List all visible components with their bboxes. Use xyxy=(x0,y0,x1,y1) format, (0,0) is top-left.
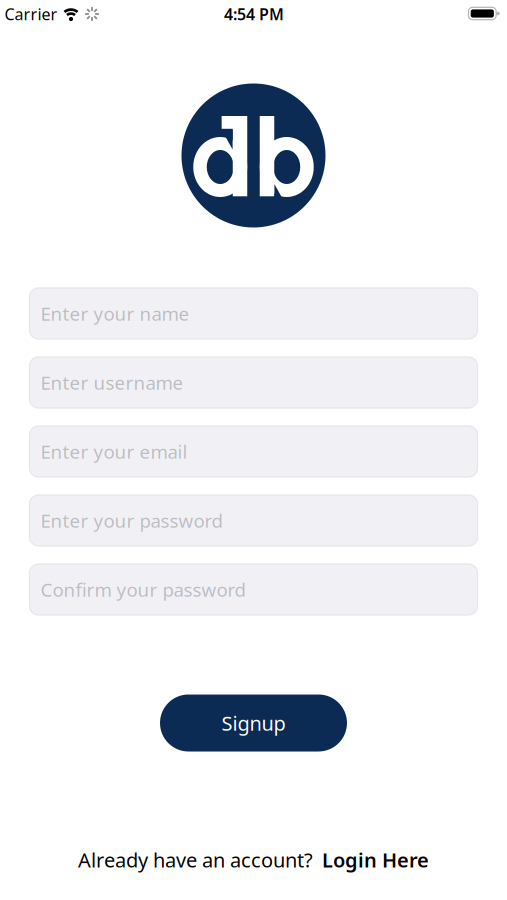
staticText: Already have an account? xyxy=(78,846,313,873)
staticText: Carrier xyxy=(4,3,57,25)
staticText: Enter username xyxy=(40,370,183,395)
staticText: Enter your password xyxy=(40,508,222,533)
staticText: Login Here xyxy=(322,846,429,873)
staticText: 4:54 PM xyxy=(224,3,284,25)
staticText: Enter your email xyxy=(40,439,187,464)
staticText: Signup xyxy=(221,710,285,736)
button[interactable]: Signup xyxy=(160,694,347,751)
staticText: Enter your name xyxy=(40,301,189,326)
staticText: Confirm your password xyxy=(40,577,245,602)
button[interactable]: Login Here xyxy=(322,846,429,873)
